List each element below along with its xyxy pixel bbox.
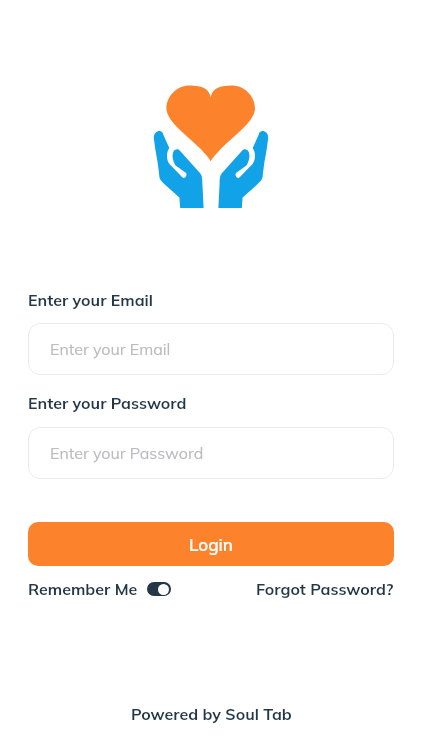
staticText: Login — [189, 534, 233, 555]
button[interactable]: Remember Me — [28, 579, 171, 599]
button[interactable]: Enter your Email — [28, 323, 394, 375]
staticText: Enter your Password — [28, 393, 187, 413]
staticText: Remember Me — [28, 579, 138, 599]
staticText: Enter your Email — [28, 290, 153, 310]
staticText: Enter your Password — [50, 443, 204, 463]
button[interactable]: Enter your Password — [28, 427, 394, 479]
staticText: Forgot Password? — [256, 579, 394, 599]
button[interactable]: Login — [28, 522, 394, 566]
button[interactable]: Forgot Password? — [256, 579, 394, 599]
staticText: Powered by Soul Tab — [131, 704, 292, 724]
other: Soul Tab logo — [153, 84, 269, 208]
staticText: Enter your Email — [50, 339, 171, 359]
